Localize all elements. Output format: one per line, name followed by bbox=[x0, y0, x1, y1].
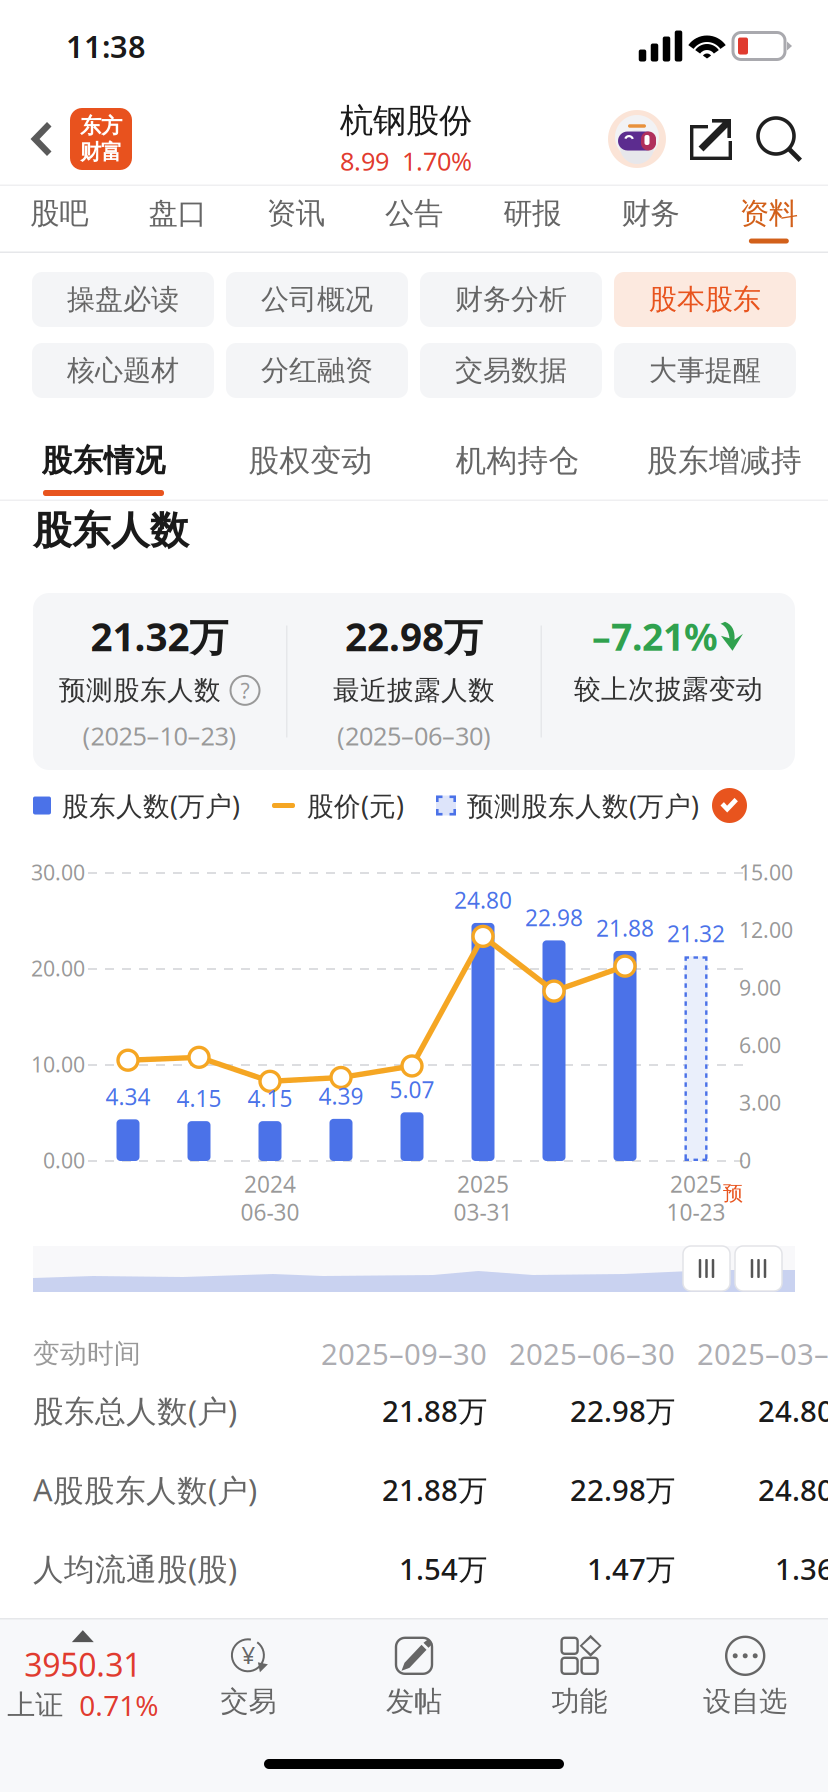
button[interactable]: 研报 bbox=[473, 186, 591, 253]
button[interactable]: 财务 bbox=[591, 186, 710, 253]
button[interactable]: 智能助手 bbox=[608, 110, 666, 168]
button[interactable]: 3950.31 bbox=[0, 1618, 166, 1736]
button[interactable]: 返回 bbox=[0, 98, 132, 180]
staticText: 9.00 bbox=[739, 973, 781, 1001]
button[interactable]: 左侧滑块 bbox=[683, 1246, 730, 1291]
staticText: 预测股东人数 bbox=[59, 674, 221, 707]
button[interactable]: 盘口 bbox=[118, 186, 237, 253]
staticText: 2025 bbox=[457, 1169, 509, 1199]
staticText: 资料 bbox=[740, 195, 798, 231]
staticText: 20.00 bbox=[31, 954, 85, 982]
staticText: 03-31 bbox=[453, 1197, 512, 1227]
staticText: 21.88万 bbox=[382, 1391, 487, 1430]
staticText: 1.47万 bbox=[587, 1549, 675, 1588]
staticText: 2025 bbox=[670, 1169, 722, 1199]
staticText: ? bbox=[240, 676, 249, 704]
staticText: 1.70% bbox=[402, 144, 472, 178]
staticText: 股东人数 bbox=[33, 507, 189, 554]
staticText: 10-23 bbox=[666, 1197, 725, 1227]
button[interactable]: 公告 bbox=[355, 186, 473, 253]
staticText: 财务分析 bbox=[455, 282, 567, 317]
staticText: 财富 bbox=[80, 139, 122, 165]
staticText: 8.99 bbox=[340, 144, 389, 178]
button[interactable]: 分享 bbox=[690, 118, 732, 160]
staticText: 核心题材 bbox=[67, 353, 179, 388]
staticText: 21.32万 bbox=[90, 611, 228, 662]
button[interactable]: 大事提醒 bbox=[614, 343, 796, 398]
staticText: 3950.31 bbox=[24, 1643, 141, 1686]
button[interactable]: 公司概况 bbox=[226, 272, 408, 327]
button[interactable]: 资讯 bbox=[237, 186, 355, 253]
staticText: 发帖 bbox=[386, 1684, 442, 1719]
staticText: 4.15 bbox=[247, 1083, 292, 1113]
staticText: 1.36万 bbox=[775, 1549, 828, 1588]
staticText: 上证 bbox=[7, 1688, 63, 1722]
staticText: 最近披露人数 bbox=[333, 674, 495, 707]
staticText: 机构持仓 bbox=[455, 442, 579, 480]
staticText: 24.80万 bbox=[758, 1391, 828, 1430]
staticText: 股东情况 bbox=[41, 442, 165, 480]
staticText: 预测股东人数(万户) bbox=[467, 788, 699, 823]
staticText: 06-30 bbox=[240, 1197, 299, 1227]
staticText: 研报 bbox=[503, 195, 561, 231]
staticText: 2025–03–30 bbox=[697, 1334, 828, 1373]
button[interactable]: 核心题材 bbox=[32, 343, 214, 398]
staticText: 设自选 bbox=[703, 1684, 787, 1719]
staticText: 财务 bbox=[622, 195, 680, 231]
staticText: 4.39 bbox=[318, 1081, 363, 1111]
staticText: 10.00 bbox=[31, 1050, 85, 1078]
staticText: 21.88 bbox=[596, 913, 654, 943]
button[interactable]: 搜索 bbox=[756, 116, 802, 162]
staticText: 股本股东 bbox=[649, 282, 761, 317]
staticText: (2025–10–23) bbox=[82, 719, 236, 752]
staticText: 24.80万 bbox=[758, 1470, 828, 1509]
button[interactable]: 财务分析 bbox=[420, 272, 602, 327]
staticText: 交易 bbox=[220, 1684, 276, 1719]
button[interactable]: 资料 bbox=[710, 186, 828, 253]
staticText: 6.00 bbox=[739, 1031, 781, 1059]
staticText: 22.98万 bbox=[570, 1470, 675, 1509]
staticText: 30.00 bbox=[31, 858, 85, 886]
button[interactable]: 发帖 bbox=[331, 1618, 497, 1736]
staticText: 11:38 bbox=[66, 26, 146, 66]
button[interactable]: 股吧 bbox=[0, 186, 118, 253]
staticText: 0 bbox=[739, 1146, 751, 1174]
staticText: 1.54万 bbox=[399, 1549, 487, 1588]
button[interactable]: 功能 bbox=[497, 1618, 662, 1736]
button[interactable]: ¥ bbox=[166, 1618, 331, 1736]
staticText: 3.00 bbox=[739, 1088, 781, 1117]
staticText: 操盘必读 bbox=[67, 282, 179, 317]
button[interactable]: 设自选 bbox=[662, 1618, 828, 1736]
button[interactable]: 股东增减持 bbox=[621, 420, 828, 501]
staticText: 公司概况 bbox=[261, 282, 373, 317]
staticText: 预 bbox=[723, 1181, 743, 1206]
staticText: 股东增减持 bbox=[647, 442, 802, 480]
button[interactable]: 股东情况 bbox=[0, 420, 207, 501]
staticText: 22.98万 bbox=[570, 1391, 675, 1430]
staticText: 较上次披露变动 bbox=[574, 673, 763, 706]
staticText: 分红融资 bbox=[261, 353, 373, 388]
staticText: 公告 bbox=[385, 195, 443, 231]
staticText: 22.98 bbox=[525, 902, 583, 932]
button[interactable]: 右侧滑块 bbox=[735, 1246, 782, 1291]
staticText: 股权变动 bbox=[248, 442, 372, 480]
staticText: ¥ bbox=[241, 1639, 255, 1671]
staticText: (2025–06–30) bbox=[337, 719, 491, 752]
staticText: 21.88万 bbox=[382, 1470, 487, 1509]
button[interactable]: 机构持仓 bbox=[414, 420, 621, 501]
staticText: 盘口 bbox=[148, 195, 206, 231]
staticText: 大事提醒 bbox=[649, 353, 761, 388]
staticText: 变动时间 bbox=[33, 1337, 141, 1370]
button[interactable]: 交易数据 bbox=[420, 343, 602, 398]
staticText: 股吧 bbox=[30, 195, 88, 231]
button[interactable]: 股权变动 bbox=[207, 420, 414, 501]
staticText: 2025–09–30 bbox=[321, 1334, 487, 1373]
staticText: 0.00 bbox=[43, 1146, 85, 1174]
staticText: 21.32 bbox=[667, 918, 725, 948]
staticText: 交易数据 bbox=[455, 353, 567, 388]
staticText: 24.80 bbox=[454, 885, 512, 915]
button[interactable]: 股本股东 bbox=[614, 272, 796, 327]
button[interactable]: 分红融资 bbox=[226, 343, 408, 398]
button[interactable]: 操盘必读 bbox=[32, 272, 214, 327]
